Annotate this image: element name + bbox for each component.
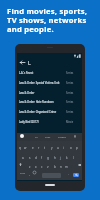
button[interactable]: d xyxy=(33,155,38,161)
staticText: L.A.'s Finest xyxy=(19,71,34,75)
staticText: v xyxy=(47,165,49,169)
button[interactable]: x xyxy=(33,164,38,170)
button[interactable]: Search xyxy=(73,173,79,177)
button[interactable]: LAST xyxy=(43,133,53,140)
button[interactable]: e xyxy=(30,145,35,151)
staticText: o xyxy=(70,146,72,150)
staticText: Series xyxy=(66,110,74,114)
staticText: Movie xyxy=(66,120,74,124)
staticText: n xyxy=(60,165,62,169)
button[interactable]: g xyxy=(45,155,50,161)
button[interactable]: , xyxy=(27,171,31,176)
staticText: Series xyxy=(66,81,74,85)
button[interactable]: s xyxy=(27,155,32,161)
staticText: i xyxy=(63,146,64,150)
staticText: z xyxy=(29,165,31,169)
staticText: Series xyxy=(66,71,74,75)
staticText: Law & Order: Hate Rundown xyxy=(19,100,54,104)
button[interactable]: p xyxy=(74,145,79,151)
button[interactable]: f xyxy=(39,155,44,161)
button[interactable]: k xyxy=(64,155,69,161)
staticText: l xyxy=(73,156,74,160)
button[interactable]: Law & Order: Special Victims Unit xyxy=(19,78,74,88)
button[interactable]: l xyxy=(71,155,76,161)
button[interactable]: t xyxy=(42,145,47,151)
button[interactable]: LA xyxy=(31,133,41,140)
staticText: h xyxy=(54,156,56,160)
button[interactable]: Lady Bird (2017) xyxy=(19,117,74,127)
staticText: c xyxy=(41,165,43,169)
staticText: Lady Bird (2017) xyxy=(19,120,39,124)
staticText: s xyxy=(29,156,31,160)
button[interactable]: o xyxy=(68,145,73,151)
button[interactable]: L.A.'s Finest xyxy=(19,68,74,78)
staticText: w xyxy=(24,146,27,150)
button[interactable]: LATEST xyxy=(57,133,67,140)
staticText: j xyxy=(60,156,61,160)
staticText: m xyxy=(65,165,68,169)
button[interactable]: i xyxy=(61,145,66,151)
staticText: q xyxy=(19,146,21,150)
staticText: Series xyxy=(66,91,74,95)
staticText: Law & Order: Organized Crime xyxy=(19,110,57,114)
button[interactable]: w xyxy=(23,145,28,151)
staticText: e xyxy=(32,146,34,150)
button[interactable]: . xyxy=(66,171,70,176)
staticText: Law & Order: Special Victims Unit xyxy=(19,81,60,85)
staticText: r xyxy=(38,146,40,150)
button[interactable]: c xyxy=(39,164,44,170)
button[interactable]: Shift xyxy=(18,162,23,167)
staticText: , xyxy=(29,172,30,176)
staticText: Series xyxy=(66,100,74,104)
staticText: k xyxy=(66,156,68,160)
button[interactable]: a xyxy=(20,155,25,161)
staticText: LATEST xyxy=(58,135,66,138)
staticText: ?123 xyxy=(20,172,25,175)
button[interactable]: q xyxy=(17,145,22,151)
staticText: LAST xyxy=(45,135,51,138)
staticText: g xyxy=(47,156,49,160)
button[interactable]: Law & Order: Hate Rundown xyxy=(19,97,74,107)
staticText: x xyxy=(35,165,37,169)
other: Voice input xyxy=(74,135,76,138)
button[interactable]: Back xyxy=(19,59,26,66)
button[interactable]: y xyxy=(49,145,54,151)
button[interactable]: h xyxy=(52,155,57,161)
staticText: p xyxy=(76,146,78,150)
staticText: . xyxy=(68,172,69,176)
staticText: Law & Order xyxy=(19,91,35,95)
staticText: Find movies, sports, TV shows, networks … xyxy=(7,6,88,34)
staticText: LA xyxy=(35,135,38,138)
button[interactable]: j xyxy=(58,155,63,161)
staticText: L xyxy=(28,59,31,66)
staticText: d xyxy=(35,156,37,160)
button[interactable]: Back xyxy=(19,58,82,67)
button[interactable]: u xyxy=(55,145,60,151)
staticText: f xyxy=(41,156,43,160)
button[interactable]: v xyxy=(45,164,50,170)
staticText: a xyxy=(22,156,24,160)
button[interactable]: ?123 xyxy=(19,171,25,176)
staticText: t xyxy=(44,146,46,150)
staticText: u xyxy=(57,146,59,150)
button[interactable]: n xyxy=(58,164,63,170)
button[interactable]: r xyxy=(36,145,41,151)
button[interactable]: Law & Order: Organized Crime xyxy=(19,107,74,117)
button[interactable]: Emoji xyxy=(33,171,36,174)
staticText: y xyxy=(51,146,53,150)
button[interactable]: LA xyxy=(17,133,82,141)
staticText: b xyxy=(54,165,56,169)
button[interactable]: b xyxy=(52,164,57,170)
button[interactable]: Law & Order xyxy=(19,88,74,98)
button[interactable]: Backspace xyxy=(77,162,82,167)
button[interactable]: m xyxy=(64,164,69,170)
button[interactable]: z xyxy=(27,164,32,170)
